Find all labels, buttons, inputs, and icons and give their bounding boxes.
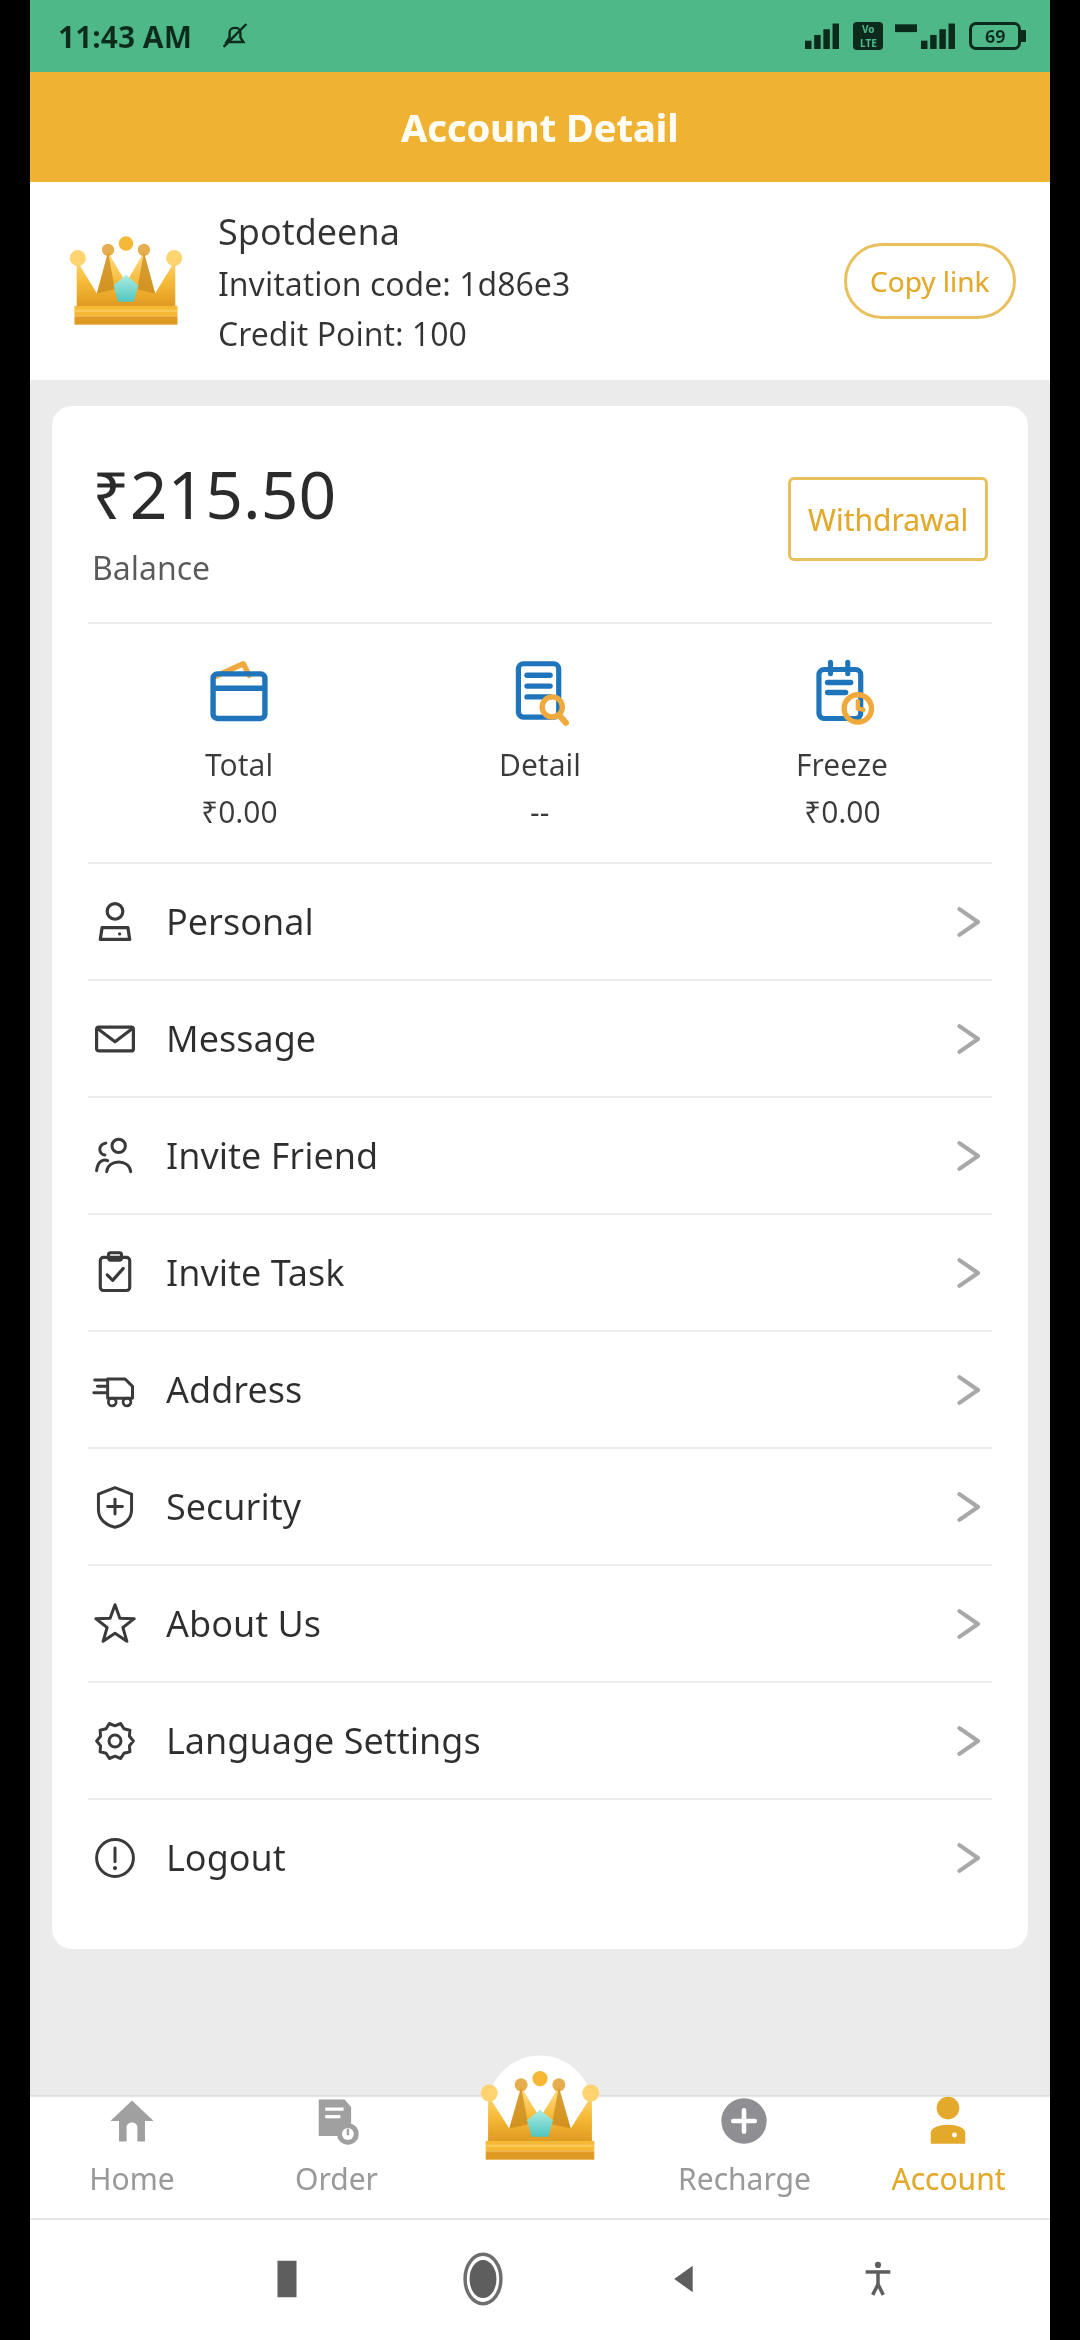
staticText: Vo — [862, 22, 875, 36]
button[interactable]: Order — [234, 2094, 438, 2218]
staticText: About Us — [166, 1599, 954, 1648]
staticText: 69 — [985, 24, 1006, 49]
button[interactable]: About Us — [52, 1566, 1028, 1681]
button[interactable]: Invite Friend — [52, 1098, 1028, 1213]
button[interactable]: Detail — [425, 654, 655, 836]
button[interactable]: Account — [846, 2094, 1050, 2218]
button[interactable]: Total — [124, 654, 354, 836]
staticText: Balance — [92, 546, 211, 590]
button[interactable]: Message — [52, 981, 1028, 1096]
button[interactable]: Language Settings — [52, 1683, 1028, 1798]
button[interactable]: Security — [52, 1449, 1028, 1564]
staticText: Detail — [499, 744, 581, 785]
button[interactable]: Recharge — [642, 2094, 846, 2218]
button[interactable]: Copy link — [844, 243, 1016, 319]
staticText: Recharge — [678, 2158, 811, 2199]
button[interactable]: Home — [30, 2094, 234, 2218]
button[interactable]: Personal — [52, 864, 1028, 979]
staticText: Freeze — [796, 744, 888, 785]
staticText: Address — [166, 1365, 954, 1414]
staticText: 11:43 AM — [58, 16, 192, 57]
other: Back — [661, 2257, 705, 2301]
other: Recents — [270, 2255, 304, 2303]
staticText: Account Detail — [401, 101, 679, 153]
button[interactable]: Withdrawal — [788, 477, 988, 561]
staticText: -- — [530, 791, 550, 832]
staticText: Copy link — [870, 262, 990, 300]
staticText: Message — [166, 1014, 954, 1063]
staticText: Personal — [166, 897, 954, 946]
staticText: Order — [295, 2158, 378, 2199]
staticText: Language Settings — [166, 1716, 954, 1765]
staticText: Invite Friend — [166, 1131, 954, 1180]
button[interactable]: Crown — [438, 2094, 642, 2218]
staticText: Invitation code: 1d86e3 — [218, 262, 571, 306]
staticText: Total — [205, 744, 274, 785]
button[interactable]: Freeze — [727, 654, 957, 836]
staticText: Home — [89, 2158, 175, 2199]
staticText: Spotdeena — [218, 207, 400, 256]
staticText: Security — [166, 1482, 954, 1531]
staticText: Credit Point: 100 — [218, 312, 467, 356]
staticText: Account — [891, 2158, 1006, 2199]
staticText: Logout — [166, 1833, 954, 1882]
button[interactable]: Logout — [52, 1800, 1028, 1915]
staticText: LTE — [860, 36, 877, 50]
button[interactable]: Address — [52, 1332, 1028, 1447]
staticText: Invite Task — [166, 1248, 954, 1297]
staticText: ₹0.00 — [804, 791, 881, 832]
staticText: Withdrawal — [808, 499, 969, 540]
other: Accessibility — [856, 2257, 900, 2301]
other: Home — [455, 2251, 511, 2307]
button[interactable]: Invite Task — [52, 1215, 1028, 1330]
staticText: ₹0.00 — [201, 791, 278, 832]
staticText: ₹215.50 — [92, 448, 337, 538]
